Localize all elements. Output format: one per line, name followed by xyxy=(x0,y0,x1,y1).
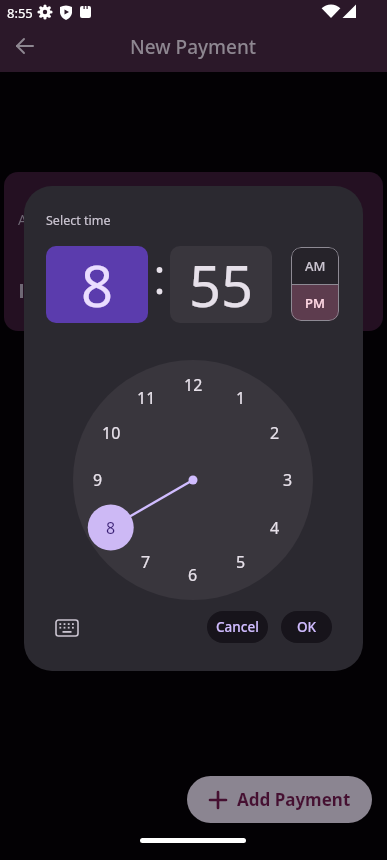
button[interactable]: 8 xyxy=(46,246,148,323)
staticText: 2 xyxy=(270,422,280,444)
staticText: 11 xyxy=(137,387,156,409)
staticText: New Payment xyxy=(130,34,257,60)
staticText: 7 xyxy=(141,551,151,573)
staticText: 9 xyxy=(93,469,103,491)
staticText: 8 xyxy=(106,517,116,539)
staticText: 12 xyxy=(184,374,203,396)
button[interactable]: 55 xyxy=(170,246,272,323)
staticText: 4 xyxy=(270,517,280,539)
staticText: 5 xyxy=(236,551,246,573)
staticText: 6 xyxy=(188,564,198,586)
staticText: Select time xyxy=(46,212,111,229)
button[interactable]: OK xyxy=(281,611,332,643)
button[interactable]: AM xyxy=(291,247,339,284)
button[interactable]: PM xyxy=(291,285,339,321)
button[interactable]: Cancel xyxy=(207,611,268,643)
staticText: A xyxy=(18,210,27,229)
staticText: OK xyxy=(297,618,317,636)
staticText: PM xyxy=(305,294,325,312)
staticText: 55 xyxy=(189,247,254,323)
staticText: Add Payment xyxy=(237,788,351,811)
staticText: 8 xyxy=(81,247,114,323)
button[interactable] xyxy=(9,30,41,62)
staticText: 8:55 xyxy=(7,4,33,22)
staticText: 3 xyxy=(283,469,293,491)
button[interactable]: Add Payment xyxy=(187,776,372,823)
staticText: AM xyxy=(305,257,326,275)
staticText: 10 xyxy=(102,422,121,444)
staticText: Cancel xyxy=(216,618,259,636)
button[interactable] xyxy=(48,609,86,647)
staticText: 1 xyxy=(236,387,246,409)
